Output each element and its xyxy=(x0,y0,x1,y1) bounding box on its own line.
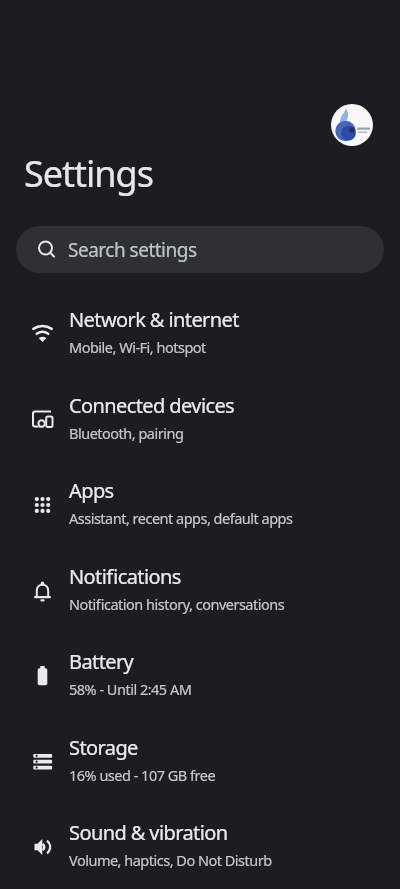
button[interactable]: Network & internet xyxy=(0,292,400,378)
button[interactable]: Notifications xyxy=(0,549,400,634)
staticText: Battery xyxy=(69,648,134,675)
staticText: Volume, haptics, Do Not Disturb xyxy=(69,850,272,870)
staticText: 16% used - 107 GB free xyxy=(69,765,216,785)
staticText: Assistant, recent apps, default apps xyxy=(69,508,293,528)
staticText: Notifications xyxy=(69,563,181,590)
staticText: Notification history, conversations xyxy=(69,594,285,614)
button[interactable]: Sound & vibration xyxy=(0,805,400,889)
staticText: Settings xyxy=(24,149,153,198)
staticText: Storage xyxy=(69,734,138,761)
button[interactable]: Search settings xyxy=(16,226,384,273)
staticText: Apps xyxy=(69,477,114,504)
button[interactable]: Connected devices xyxy=(0,378,400,463)
staticText: Sound & vibration xyxy=(69,819,228,846)
button[interactable]: Apps xyxy=(0,463,400,549)
button[interactable] xyxy=(331,104,373,146)
staticText: Bluetooth, pairing xyxy=(69,423,184,443)
staticText: Network & internet xyxy=(69,306,239,333)
button[interactable]: Battery xyxy=(0,634,400,720)
button[interactable]: Storage xyxy=(0,720,400,805)
staticText: Mobile, Wi-Fi, hotspot xyxy=(69,337,206,357)
staticText: 58% - Until 2:45 AM xyxy=(69,679,192,699)
staticText: Connected devices xyxy=(69,392,235,419)
staticText: Search settings xyxy=(68,237,197,263)
